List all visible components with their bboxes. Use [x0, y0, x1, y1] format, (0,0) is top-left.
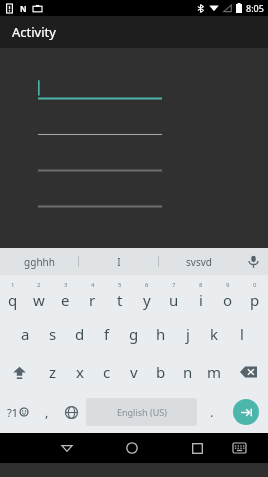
button[interactable]: c: [93, 353, 120, 391]
staticText: 0: [253, 281, 257, 289]
staticText: 8: [199, 281, 203, 289]
staticText: g: [129, 324, 139, 344]
button[interactable]: 7: [160, 275, 187, 315]
staticText: .: [210, 403, 214, 421]
staticText: N: [20, 3, 27, 14]
button[interactable]: 1: [0, 275, 26, 315]
button[interactable]: Backspace: [228, 353, 268, 391]
staticText: svsvd: [186, 255, 212, 269]
staticText: 1: [11, 281, 15, 289]
button[interactable]: 2: [26, 275, 52, 315]
staticText: x: [76, 362, 84, 382]
button[interactable]: English (US): [86, 398, 197, 426]
staticText: gghhh: [24, 255, 55, 269]
button[interactable]: Back: [46, 433, 88, 463]
button[interactable]: Voice input: [238, 248, 268, 275]
button[interactable]: g: [120, 315, 147, 353]
staticText: j: [186, 324, 190, 344]
button[interactable]: I: [79, 248, 158, 275]
button[interactable]: 3: [52, 275, 79, 315]
button[interactable]: n: [174, 353, 201, 391]
staticText: u: [169, 290, 179, 310]
staticText: ?1: [7, 405, 19, 420]
staticText: a: [21, 324, 30, 344]
staticText: f: [104, 324, 110, 344]
staticText: m: [207, 362, 222, 382]
staticText: 7: [172, 281, 176, 289]
button[interactable]: 6: [133, 275, 160, 315]
button[interactable]: Recent apps: [176, 433, 218, 463]
staticText: Activity: [12, 23, 56, 41]
button[interactable]: h: [147, 315, 174, 353]
button[interactable]: Shift: [0, 353, 39, 391]
button[interactable]: d: [66, 315, 93, 353]
button[interactable]: .: [199, 391, 224, 433]
staticText: v: [130, 362, 138, 382]
staticText: 8:05: [246, 2, 264, 14]
staticText: l: [240, 324, 244, 344]
staticText: o: [223, 290, 233, 310]
button[interactable]: s: [39, 315, 66, 353]
button[interactable]: m: [201, 353, 228, 391]
button[interactable]: 8: [187, 275, 214, 315]
button[interactable]: x: [66, 353, 93, 391]
button[interactable]: 9: [214, 275, 241, 315]
staticText: c: [103, 362, 111, 382]
staticText: d: [75, 324, 85, 344]
button[interactable]: v: [120, 353, 147, 391]
staticText: I: [117, 255, 121, 269]
button[interactable]: l: [228, 315, 255, 353]
staticText: 9: [226, 281, 230, 289]
staticText: p: [250, 290, 260, 310]
staticText: z: [49, 362, 57, 382]
staticText: k: [210, 324, 219, 344]
button[interactable]: 0: [241, 275, 268, 315]
button[interactable]: gghhh: [0, 248, 78, 275]
button[interactable]: Switch keyboard: [218, 433, 260, 463]
staticText: s: [49, 324, 57, 344]
button[interactable]: a: [12, 315, 39, 353]
staticText: 6: [145, 281, 149, 289]
staticText: English (US): [117, 406, 167, 418]
staticText: q: [8, 290, 18, 310]
button[interactable]: 5: [106, 275, 133, 315]
button[interactable]: Enter: [233, 399, 259, 425]
button[interactable]: Home: [111, 433, 153, 463]
button[interactable]: b: [147, 353, 174, 391]
staticText: 4: [91, 281, 95, 289]
staticText: i: [199, 290, 203, 310]
button[interactable]: Change language: [59, 391, 84, 433]
staticText: y: [143, 290, 151, 310]
button[interactable]: k: [201, 315, 228, 353]
button[interactable]: ,: [35, 391, 59, 433]
staticText: h: [156, 324, 166, 344]
staticText: ,: [45, 403, 49, 421]
button[interactable]: [38, 78, 162, 97]
button[interactable]: ?1: [0, 391, 35, 433]
staticText: r: [89, 290, 96, 310]
button[interactable]: svsvd: [159, 248, 238, 275]
button[interactable]: j: [174, 315, 201, 353]
staticText: b: [156, 362, 166, 382]
staticText: w: [33, 290, 45, 310]
button[interactable]: f: [93, 315, 120, 353]
staticText: e: [61, 290, 70, 310]
staticText: t: [117, 290, 123, 310]
button[interactable]: z: [39, 353, 66, 391]
staticText: 3: [64, 281, 68, 289]
staticText: 5: [118, 281, 122, 289]
button[interactable]: 4: [79, 275, 106, 315]
staticText: n: [183, 362, 193, 382]
staticText: 2: [37, 281, 41, 289]
